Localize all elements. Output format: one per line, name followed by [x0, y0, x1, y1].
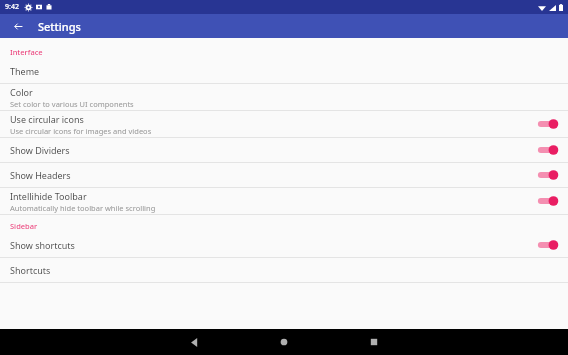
staticText: Set color to various UI components	[10, 99, 134, 109]
button[interactable]: Toggle	[534, 115, 560, 133]
button[interactable]: Show shortcuts	[0, 233, 568, 257]
staticText: Use circular icons for images and videos	[10, 126, 152, 136]
button[interactable]: Color	[0, 84, 568, 110]
button[interactable]: Intellihide Toolbar	[0, 188, 568, 214]
button[interactable]: Toggle	[534, 236, 560, 254]
button[interactable]: Toggle	[534, 141, 560, 159]
staticText: Interface	[10, 47, 43, 57]
staticText: Show Headers	[10, 169, 71, 181]
staticText: Shortcuts	[10, 264, 51, 276]
button[interactable]: Toggle	[534, 192, 560, 210]
staticText: Theme	[10, 65, 40, 77]
staticText: 9:42	[5, 2, 19, 12]
button[interactable]: Back	[8, 16, 28, 36]
button[interactable]: Use circular icons	[0, 111, 568, 137]
button[interactable]: Back	[172, 329, 216, 355]
staticText: Sidebar	[10, 221, 38, 231]
button[interactable]: Shortcuts	[0, 258, 568, 282]
staticText: Settings	[38, 19, 81, 34]
staticText: Show Dividers	[10, 144, 70, 156]
button[interactable]: Recent apps	[352, 329, 396, 355]
staticText: Color	[10, 86, 33, 98]
staticText: Automatically hide toolbar while scrolli…	[10, 203, 156, 213]
button[interactable]: Show Headers	[0, 163, 568, 187]
staticText: Show shortcuts	[10, 239, 75, 251]
button[interactable]: Toggle	[534, 166, 560, 184]
staticText: Use circular icons	[10, 113, 84, 125]
staticText: Intellihide Toolbar	[10, 190, 87, 202]
button[interactable]: Home	[262, 329, 306, 355]
button[interactable]: Show Dividers	[0, 138, 568, 162]
button[interactable]: Theme	[0, 59, 568, 83]
